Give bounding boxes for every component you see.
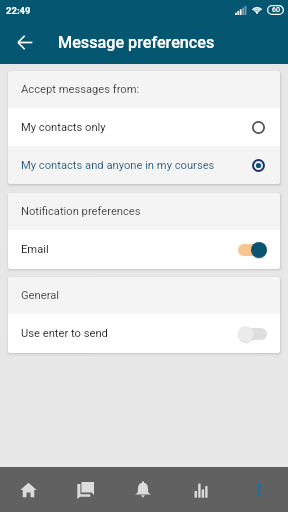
staticText: 60 — [272, 6, 280, 14]
button[interactable]: Use enter to send — [8, 314, 280, 353]
button[interactable]: Grades — [172, 467, 230, 512]
staticText: My contacts and anyone in my courses — [21, 159, 252, 172]
staticText: 22:49 — [6, 5, 31, 16]
button[interactable]: More options — [230, 467, 288, 512]
button[interactable]: Email — [8, 230, 280, 269]
button[interactable]: Back — [0, 20, 50, 64]
staticText: Notification preferences — [21, 205, 141, 218]
button[interactable]: Notifications — [114, 467, 172, 512]
staticText: My contacts only — [21, 121, 252, 134]
button[interactable]: My contacts and anyone in my courses — [8, 146, 280, 184]
button[interactable]: My contacts only — [8, 108, 280, 146]
staticText: Use enter to send — [21, 327, 238, 340]
staticText: General — [21, 289, 60, 302]
button[interactable]: Home — [0, 467, 57, 512]
staticText: Email — [21, 243, 238, 256]
staticText: Accept messages from: — [21, 83, 140, 96]
button[interactable]: Messages — [57, 467, 114, 512]
staticText: Message preferences — [58, 33, 215, 52]
